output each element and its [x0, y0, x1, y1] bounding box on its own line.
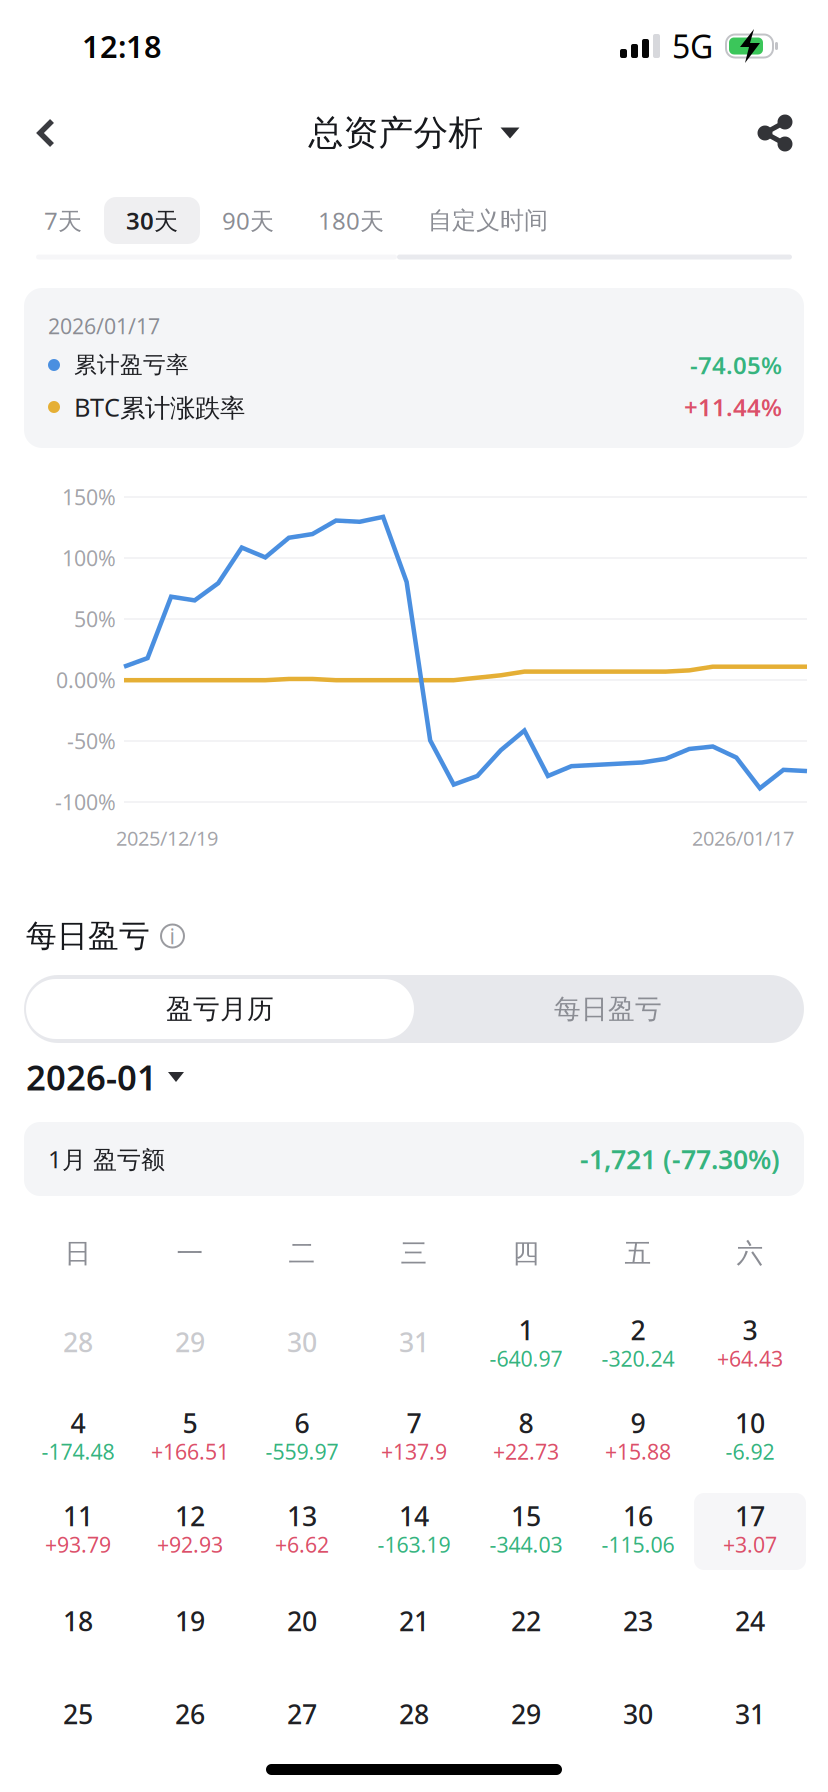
staticText: +93.79	[45, 1530, 111, 1559]
button[interactable]: 8	[470, 1400, 582, 1477]
staticText: 19	[175, 1603, 205, 1639]
button[interactable]: 29	[470, 1679, 582, 1756]
staticText: 5G	[672, 25, 713, 67]
staticText: -640.97	[489, 1344, 562, 1373]
button[interactable]: Share	[717, 92, 828, 174]
button[interactable]: 21	[358, 1586, 470, 1663]
staticText: 20	[287, 1603, 317, 1639]
button[interactable]: 17	[694, 1493, 806, 1570]
staticText: -163.19	[377, 1530, 450, 1559]
staticText: -344.03	[489, 1530, 562, 1559]
staticText: -559.97	[265, 1437, 338, 1466]
staticText: 12	[175, 1498, 205, 1534]
button[interactable]: 每日盈亏	[414, 979, 802, 1039]
button[interactable]: 26	[134, 1679, 246, 1756]
staticText: 2026/01/17	[48, 312, 160, 340]
button[interactable]: 1	[470, 1307, 582, 1384]
button[interactable]: Back	[0, 92, 113, 174]
staticText: +6.62	[275, 1530, 329, 1559]
staticText: 12:18	[82, 26, 162, 66]
staticText: 4	[70, 1405, 85, 1441]
staticText: 每日盈亏	[26, 917, 150, 955]
staticText: 二	[288, 1237, 315, 1270]
button[interactable]: 27	[246, 1679, 358, 1756]
button[interactable]: 2	[582, 1307, 694, 1384]
staticText: 四	[512, 1237, 539, 1270]
button[interactable]: 16	[582, 1493, 694, 1570]
button[interactable]: 29	[134, 1307, 246, 1384]
staticText: 5	[182, 1405, 197, 1441]
staticText: 8	[518, 1405, 533, 1441]
staticText: 16	[623, 1498, 653, 1534]
staticText: 7天	[44, 205, 82, 236]
staticText: +92.93	[157, 1530, 223, 1559]
staticText: 22	[511, 1603, 541, 1639]
button[interactable]: 盈亏月历	[26, 979, 414, 1039]
button[interactable]: 5	[134, 1400, 246, 1477]
button[interactable]: 22	[470, 1586, 582, 1663]
button[interactable]: 9	[582, 1400, 694, 1477]
button[interactable]: 15	[470, 1493, 582, 1570]
button[interactable]: 90天	[200, 197, 296, 244]
button[interactable]: 31	[358, 1307, 470, 1384]
button[interactable]: 3	[694, 1307, 806, 1384]
staticText: 27	[287, 1696, 317, 1732]
staticText: 6	[294, 1405, 309, 1441]
staticText: 24	[735, 1603, 765, 1639]
button[interactable]: 180天	[296, 197, 406, 244]
staticText: 30天	[126, 205, 178, 236]
staticText: 26	[175, 1696, 205, 1732]
staticText: 23	[623, 1603, 653, 1639]
staticText: 100%	[62, 544, 116, 572]
staticText: +137.9	[381, 1437, 447, 1466]
staticText: 3	[742, 1312, 757, 1348]
staticText: +3.07	[723, 1530, 777, 1559]
button[interactable]: 自定义时间	[406, 197, 570, 244]
button[interactable]: 25	[22, 1679, 134, 1756]
staticText: 六	[736, 1237, 763, 1270]
staticText: 盈亏月历	[166, 993, 274, 1025]
staticText: 17	[735, 1498, 765, 1534]
button[interactable]: 总资产分析	[300, 92, 527, 174]
button[interactable]: 30天	[104, 197, 200, 244]
staticText: +15.88	[605, 1437, 671, 1466]
button[interactable]: 13	[246, 1493, 358, 1570]
staticText: 180天	[318, 205, 384, 236]
staticText: 28	[399, 1696, 429, 1732]
staticText: 11	[63, 1498, 93, 1534]
button[interactable]: 20	[246, 1586, 358, 1663]
button[interactable]: 28	[358, 1679, 470, 1756]
button[interactable]: 30	[582, 1679, 694, 1756]
staticText: 29	[175, 1324, 205, 1360]
staticText: -320.24	[601, 1344, 674, 1373]
button[interactable]: 24	[694, 1586, 806, 1663]
staticText: 日	[64, 1237, 91, 1270]
staticText: 0.00%	[56, 666, 116, 694]
button[interactable]: 11	[22, 1493, 134, 1570]
button[interactable]: 14	[358, 1493, 470, 1570]
staticText: 9	[630, 1405, 645, 1441]
button[interactable]: 10	[694, 1400, 806, 1477]
staticText: -1,721 (-77.30%)	[580, 1141, 780, 1177]
staticText: 7	[406, 1405, 421, 1441]
button[interactable]: 7天	[22, 197, 104, 244]
button[interactable]: 28	[22, 1307, 134, 1384]
button[interactable]: 6	[246, 1400, 358, 1477]
staticText: 10	[735, 1405, 765, 1441]
button[interactable]: 4	[22, 1400, 134, 1477]
staticText: i	[169, 922, 175, 950]
button[interactable]: 12	[134, 1493, 246, 1570]
staticText: +64.43	[717, 1344, 783, 1373]
staticText: 2026/01/17	[692, 825, 794, 851]
staticText: 1月 盈亏额	[48, 1143, 165, 1175]
staticText: 五	[624, 1237, 651, 1270]
button[interactable]: 30	[246, 1307, 358, 1384]
button[interactable]: 23	[582, 1586, 694, 1663]
staticText: 30	[623, 1696, 653, 1732]
staticText: 总资产分析	[308, 112, 483, 154]
button[interactable]: 31	[694, 1679, 806, 1756]
staticText: 29	[511, 1696, 541, 1732]
button[interactable]: 18	[22, 1586, 134, 1663]
button[interactable]: 7	[358, 1400, 470, 1477]
button[interactable]: 19	[134, 1586, 246, 1663]
